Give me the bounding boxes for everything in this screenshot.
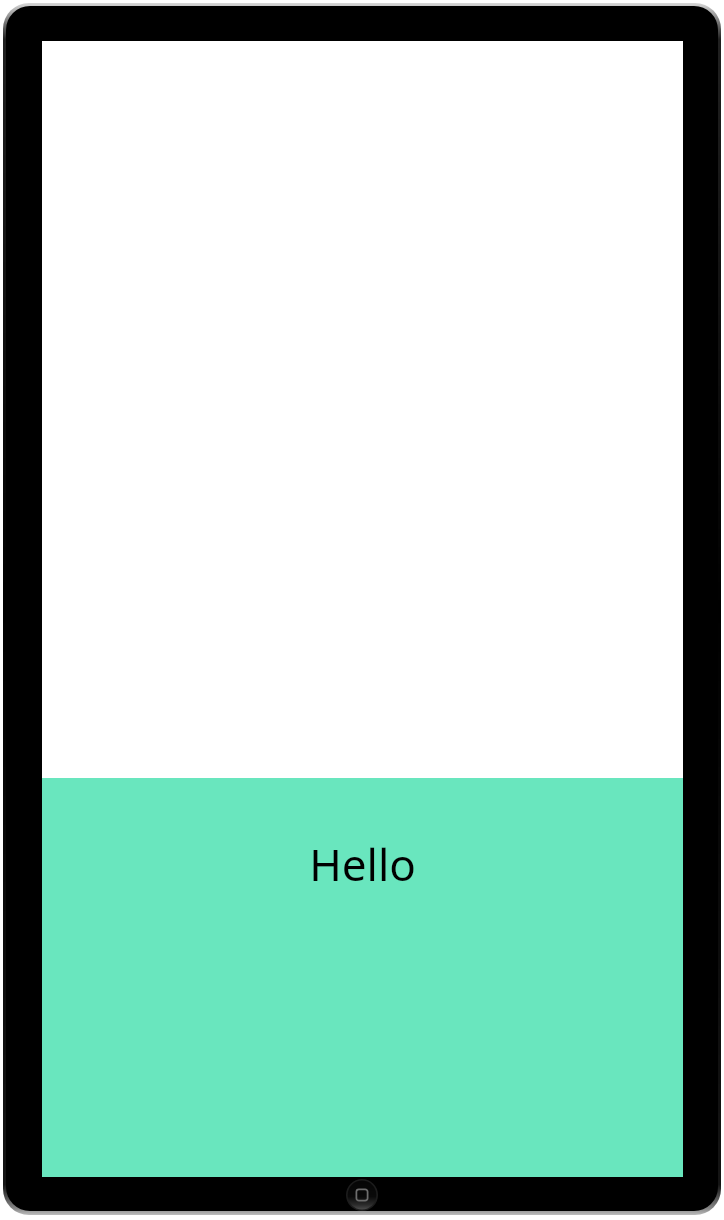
- button[interactable]: Home: [346, 1179, 378, 1211]
- staticText: Hello: [309, 834, 416, 894]
- button[interactable]: Hello: [42, 778, 683, 1177]
